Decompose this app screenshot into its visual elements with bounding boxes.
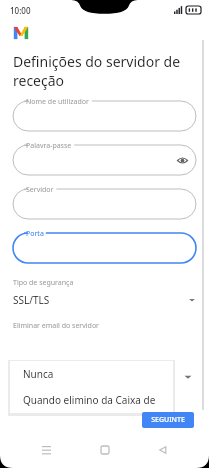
staticText: Definições do servidor de receção — [13, 52, 185, 90]
button[interactable]: Retroceder — [150, 437, 176, 463]
staticText: 10:00 — [10, 5, 31, 16]
button[interactable]: Abrir lista — [183, 372, 193, 382]
staticText: Servidor — [26, 185, 54, 195]
staticText: SSL/TLS — [13, 293, 50, 307]
button[interactable]: Nome de utilizador — [13, 101, 196, 131]
button[interactable]: Nunca — [10, 361, 173, 387]
staticText: SEGUINTE — [151, 415, 185, 425]
staticText: Tipo de segurança — [13, 278, 74, 288]
button[interactable]: Palavra-passe — [13, 145, 196, 175]
button[interactable]: Servidor — [13, 189, 196, 219]
button[interactable]: Quando elimino da Caixa de entrada — [10, 387, 173, 413]
staticText: Porta — [26, 229, 44, 239]
staticText: Palavra-passe — [26, 141, 72, 151]
staticText: Quando elimino da Caixa de entrada — [23, 393, 173, 407]
button[interactable]: Porta — [13, 233, 196, 263]
button[interactable]: Início — [92, 437, 118, 463]
button[interactable]: SEGUINTE — [142, 412, 194, 428]
button[interactable]: Recentes — [33, 437, 59, 463]
button[interactable]: Tipo de segurança — [0, 278, 209, 307]
staticText: Nome de utilizador — [26, 97, 89, 107]
staticText: Nunca — [23, 367, 54, 381]
button[interactable]: Mostrar palavra-passe — [175, 153, 189, 167]
staticText: Eliminar email do servidor — [13, 321, 100, 331]
